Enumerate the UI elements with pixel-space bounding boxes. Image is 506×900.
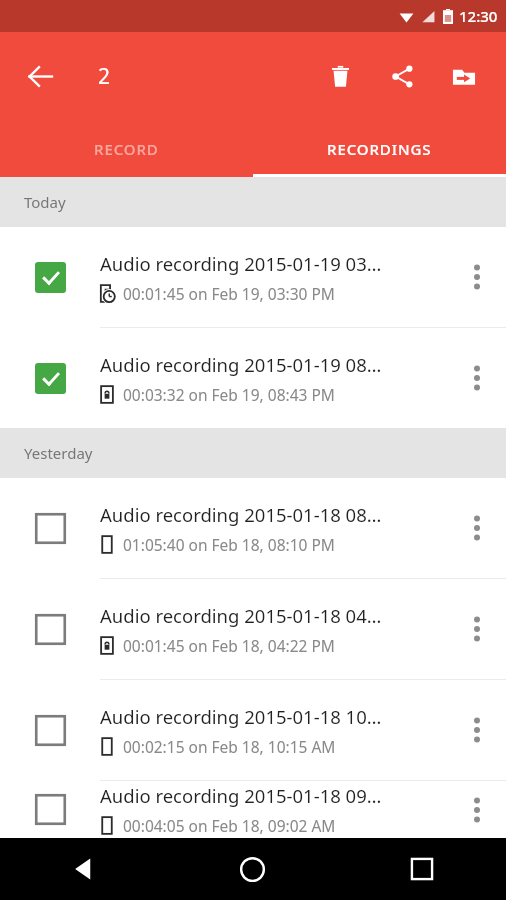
button[interactable]: Selected bbox=[0, 328, 506, 428]
staticText: RECORD bbox=[94, 139, 159, 159]
button[interactable]: Share bbox=[376, 50, 428, 102]
button[interactable]: Selected bbox=[0, 227, 100, 327]
staticText: Audio recording 2015-01-18 08… bbox=[100, 502, 382, 527]
staticText: Yesterday bbox=[24, 443, 93, 463]
button[interactable]: Not selected bbox=[0, 478, 506, 578]
button[interactable]: More options bbox=[448, 328, 506, 428]
button[interactable]: RECORDINGS bbox=[253, 120, 506, 177]
staticText: 2 bbox=[98, 62, 111, 91]
button[interactable]: Not selected bbox=[0, 781, 506, 838]
button[interactable]: Selected bbox=[0, 328, 100, 428]
button[interactable]: Back bbox=[0, 838, 168, 900]
button[interactable]: Not selected bbox=[0, 781, 100, 838]
staticText: 00:01:45 on Feb 19, 03:30 PM bbox=[123, 283, 335, 304]
button[interactable]: More options bbox=[448, 478, 506, 578]
staticText: Today bbox=[24, 192, 66, 212]
button[interactable]: Not selected bbox=[0, 680, 506, 780]
button[interactable]: Recent apps bbox=[337, 838, 506, 900]
button[interactable]: Delete bbox=[314, 50, 366, 102]
button[interactable]: RECORD bbox=[0, 120, 253, 177]
staticText: 00:03:32 on Feb 19, 08:43 PM bbox=[123, 384, 335, 405]
staticText: RECORDINGS bbox=[327, 139, 432, 159]
staticText: Audio recording 2015-01-18 04… bbox=[100, 603, 382, 628]
button[interactable]: Not selected bbox=[0, 579, 506, 679]
button[interactable]: Back bbox=[12, 48, 68, 104]
staticText: Audio recording 2015-01-18 09… bbox=[100, 783, 382, 808]
staticText: 12:30 bbox=[459, 6, 498, 26]
staticText: Audio recording 2015-01-19 08… bbox=[100, 352, 382, 377]
button[interactable]: More options bbox=[448, 781, 506, 838]
button[interactable]: Move to folder bbox=[438, 50, 490, 102]
staticText: Audio recording 2015-01-18 10… bbox=[100, 704, 382, 729]
button[interactable]: More options bbox=[448, 680, 506, 780]
button[interactable]: Home bbox=[168, 838, 337, 900]
staticText: 01:05:40 on Feb 18, 08:10 PM bbox=[123, 534, 335, 555]
button[interactable]: Not selected bbox=[0, 579, 100, 679]
button[interactable]: Not selected bbox=[0, 478, 100, 578]
staticText: 00:01:45 on Feb 18, 04:22 PM bbox=[123, 635, 335, 656]
button[interactable]: More options bbox=[448, 579, 506, 679]
staticText: 00:04:05 on Feb 18, 09:02 AM bbox=[123, 815, 336, 836]
button[interactable]: More options bbox=[448, 227, 506, 327]
staticText: Audio recording 2015-01-19 03… bbox=[100, 251, 382, 276]
button[interactable]: Selected bbox=[0, 227, 506, 327]
button[interactable]: Not selected bbox=[0, 680, 100, 780]
staticText: 00:02:15 on Feb 18, 10:15 AM bbox=[123, 736, 336, 757]
